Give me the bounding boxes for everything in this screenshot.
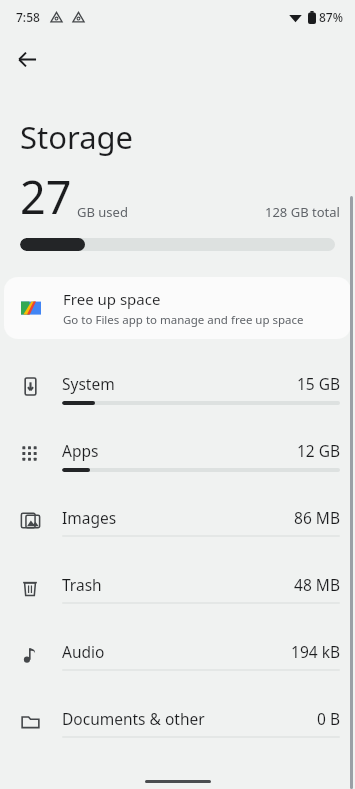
staticText: 27 xyxy=(20,166,72,224)
staticText: 12 GB xyxy=(296,440,340,461)
staticText: 87% xyxy=(319,9,343,25)
button[interactable]: Documents & other xyxy=(0,688,355,755)
button[interactable]: Trash xyxy=(0,554,355,621)
staticText: 48 MB xyxy=(294,574,340,595)
button[interactable]: Free up space xyxy=(4,277,351,339)
staticText: 128 GB total xyxy=(265,203,340,221)
staticText: 0 B xyxy=(317,708,340,729)
button[interactable]: Audio xyxy=(0,621,355,688)
staticText: 194 kB xyxy=(291,641,340,662)
button[interactable]: Back xyxy=(10,42,44,76)
staticText: 15 GB xyxy=(296,373,340,394)
staticText: GB used xyxy=(77,203,128,221)
staticText: Images xyxy=(62,507,117,528)
staticText: Apps xyxy=(62,440,99,461)
staticText: 7:58 xyxy=(16,9,40,25)
staticText: System xyxy=(62,373,115,394)
staticText: Trash xyxy=(62,574,102,595)
button[interactable]: Apps xyxy=(0,420,355,487)
staticText: Free up space xyxy=(63,289,161,309)
staticText: Audio xyxy=(62,641,105,662)
button[interactable]: System xyxy=(0,353,355,420)
staticText: Go to Files app to manage and free up sp… xyxy=(63,312,304,328)
staticText: Documents & other xyxy=(62,708,205,729)
staticText: Storage xyxy=(20,116,134,158)
button[interactable]: Images xyxy=(0,487,355,554)
staticText: 86 MB xyxy=(294,507,340,528)
